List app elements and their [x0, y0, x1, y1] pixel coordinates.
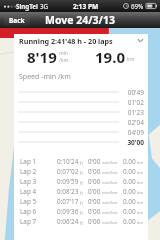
staticText: SingTel	[16, 2, 38, 10]
staticText: h	[80, 170, 83, 176]
staticText: Running 2:41'48 h - 20 laps	[19, 36, 113, 46]
button[interactable]: Lap 2	[14, 166, 148, 176]
staticText: km	[137, 170, 144, 176]
staticText: 0'00	[88, 177, 101, 186]
staticText: Back	[9, 16, 25, 25]
staticText: 2:13 PM	[73, 2, 99, 11]
staticText: min/km	[102, 160, 118, 166]
staticText: h	[80, 220, 83, 226]
staticText: km	[137, 220, 144, 226]
staticText: 3G	[40, 2, 49, 10]
staticText: 0.00	[123, 187, 136, 196]
staticText: h	[80, 200, 83, 206]
button[interactable]: Lap 5	[14, 196, 148, 206]
staticText: 01'02	[122, 98, 144, 107]
staticText: km	[137, 200, 144, 206]
staticText: 00'49	[122, 88, 144, 97]
staticText: 04'09	[122, 128, 144, 137]
staticText: 0.00	[123, 167, 136, 176]
staticText: km	[137, 190, 144, 196]
staticText: 8'19	[27, 47, 57, 66]
staticText: 0'00	[88, 217, 101, 226]
button[interactable]: Running 2:41'48 h - 20 laps	[14, 34, 148, 47]
button[interactable]: Lap 1	[14, 156, 148, 166]
staticText: 30'00	[122, 138, 144, 147]
staticText: 0:09'59	[57, 177, 79, 186]
staticText: min/km	[102, 180, 118, 186]
staticText: 01'23	[122, 108, 144, 117]
staticText: min/km	[102, 190, 118, 196]
staticText: 0'00	[88, 167, 101, 176]
staticText: 19.0	[95, 47, 125, 66]
staticText: km	[137, 160, 144, 166]
staticText: 0.00	[123, 177, 136, 186]
staticText: 0:07'02	[57, 167, 79, 176]
staticText: 0'00	[88, 197, 101, 206]
staticText: km	[137, 180, 144, 186]
button[interactable]: Lap 6	[14, 206, 148, 216]
staticText: h	[80, 190, 83, 196]
staticText: 02'04	[122, 118, 144, 127]
staticText: Lap 3	[20, 177, 44, 186]
staticText: h	[80, 210, 83, 216]
staticText: 0:06'24	[57, 217, 79, 226]
staticText: /km	[59, 57, 69, 64]
staticText: h	[80, 180, 83, 186]
staticText: Move 24/3/13	[45, 13, 115, 27]
staticText: Lap 6	[20, 207, 44, 216]
staticText: 0'00	[88, 187, 101, 196]
staticText: min/km	[102, 210, 118, 216]
staticText: 0.00	[123, 217, 136, 226]
staticText: 0:10'24	[57, 157, 79, 166]
staticText: Speed -min /km	[19, 72, 71, 82]
staticText: km	[137, 210, 144, 216]
staticText: 0'00	[88, 157, 101, 166]
staticText: 0.00	[123, 207, 136, 216]
button[interactable]: Lap 4	[14, 186, 148, 196]
staticText: min	[59, 50, 69, 57]
staticText: Lap 2	[20, 167, 44, 176]
staticText: 0.00	[123, 157, 136, 166]
staticText: h	[80, 160, 83, 166]
button[interactable]: Lap 7	[14, 216, 148, 226]
staticText: 0.00	[123, 197, 136, 206]
staticText: km	[127, 56, 135, 63]
staticText: 0:09'36	[57, 207, 79, 216]
staticText: min/km	[102, 170, 118, 176]
button[interactable]: Lap 3	[14, 176, 148, 186]
staticText: min/km	[102, 220, 118, 226]
staticText: Lap 1	[20, 157, 44, 166]
staticText: min/km	[102, 200, 118, 206]
staticText: Lap 7	[20, 217, 44, 226]
staticText: 0:07'17	[57, 197, 79, 206]
staticText: Lap 4	[20, 187, 44, 196]
staticText: 0'00	[88, 207, 101, 216]
staticText: 69%	[131, 2, 144, 10]
staticText: 0:08'23	[57, 187, 79, 196]
staticText: Lap 5	[20, 197, 44, 206]
button[interactable]: Back	[4, 15, 30, 26]
